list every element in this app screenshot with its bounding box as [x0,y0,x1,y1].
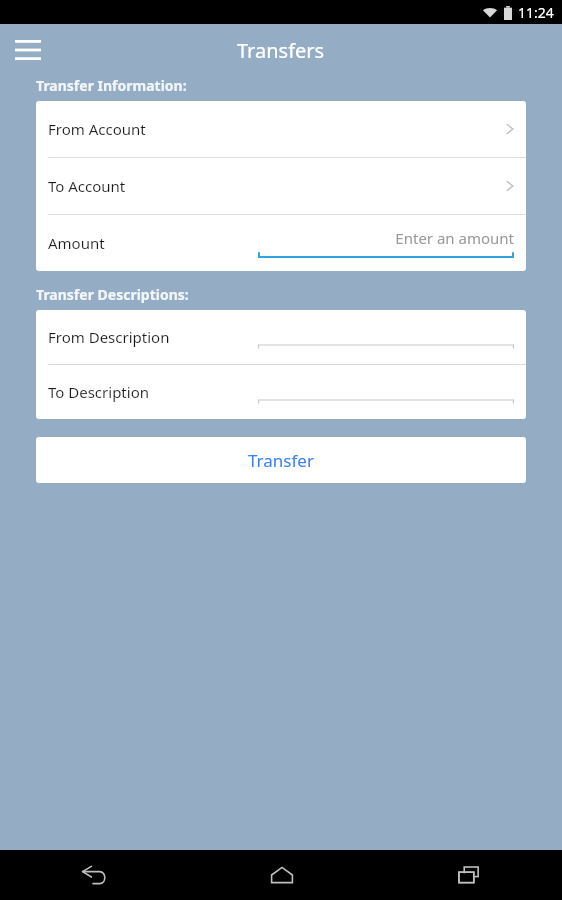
button[interactable]: Transfer [36,437,526,483]
button[interactable]: Recent apps [375,850,562,900]
button[interactable]: To Description [36,365,526,419]
staticText: Transfers [237,37,325,64]
button[interactable]: Back [0,850,188,900]
staticText: Transfer [248,449,314,472]
staticText: 11:24 [518,3,554,22]
button[interactable]: Open navigation menu [6,28,50,72]
button[interactable]: From Description [36,310,526,364]
button[interactable]: To Account [36,158,526,214]
staticText: Enter an amount [258,228,514,248]
button[interactable]: Amount [36,215,526,271]
staticText: Amount [48,233,105,253]
button[interactable]: Home [188,850,375,900]
staticText: To Account [48,176,506,196]
staticText: To Description [48,382,149,402]
staticText: Transfer Information: [36,76,187,95]
staticText: Transfer Descriptions: [36,285,189,304]
button[interactable]: From Account [36,101,526,157]
staticText: From Description [48,327,170,347]
staticText: From Account [48,119,506,139]
